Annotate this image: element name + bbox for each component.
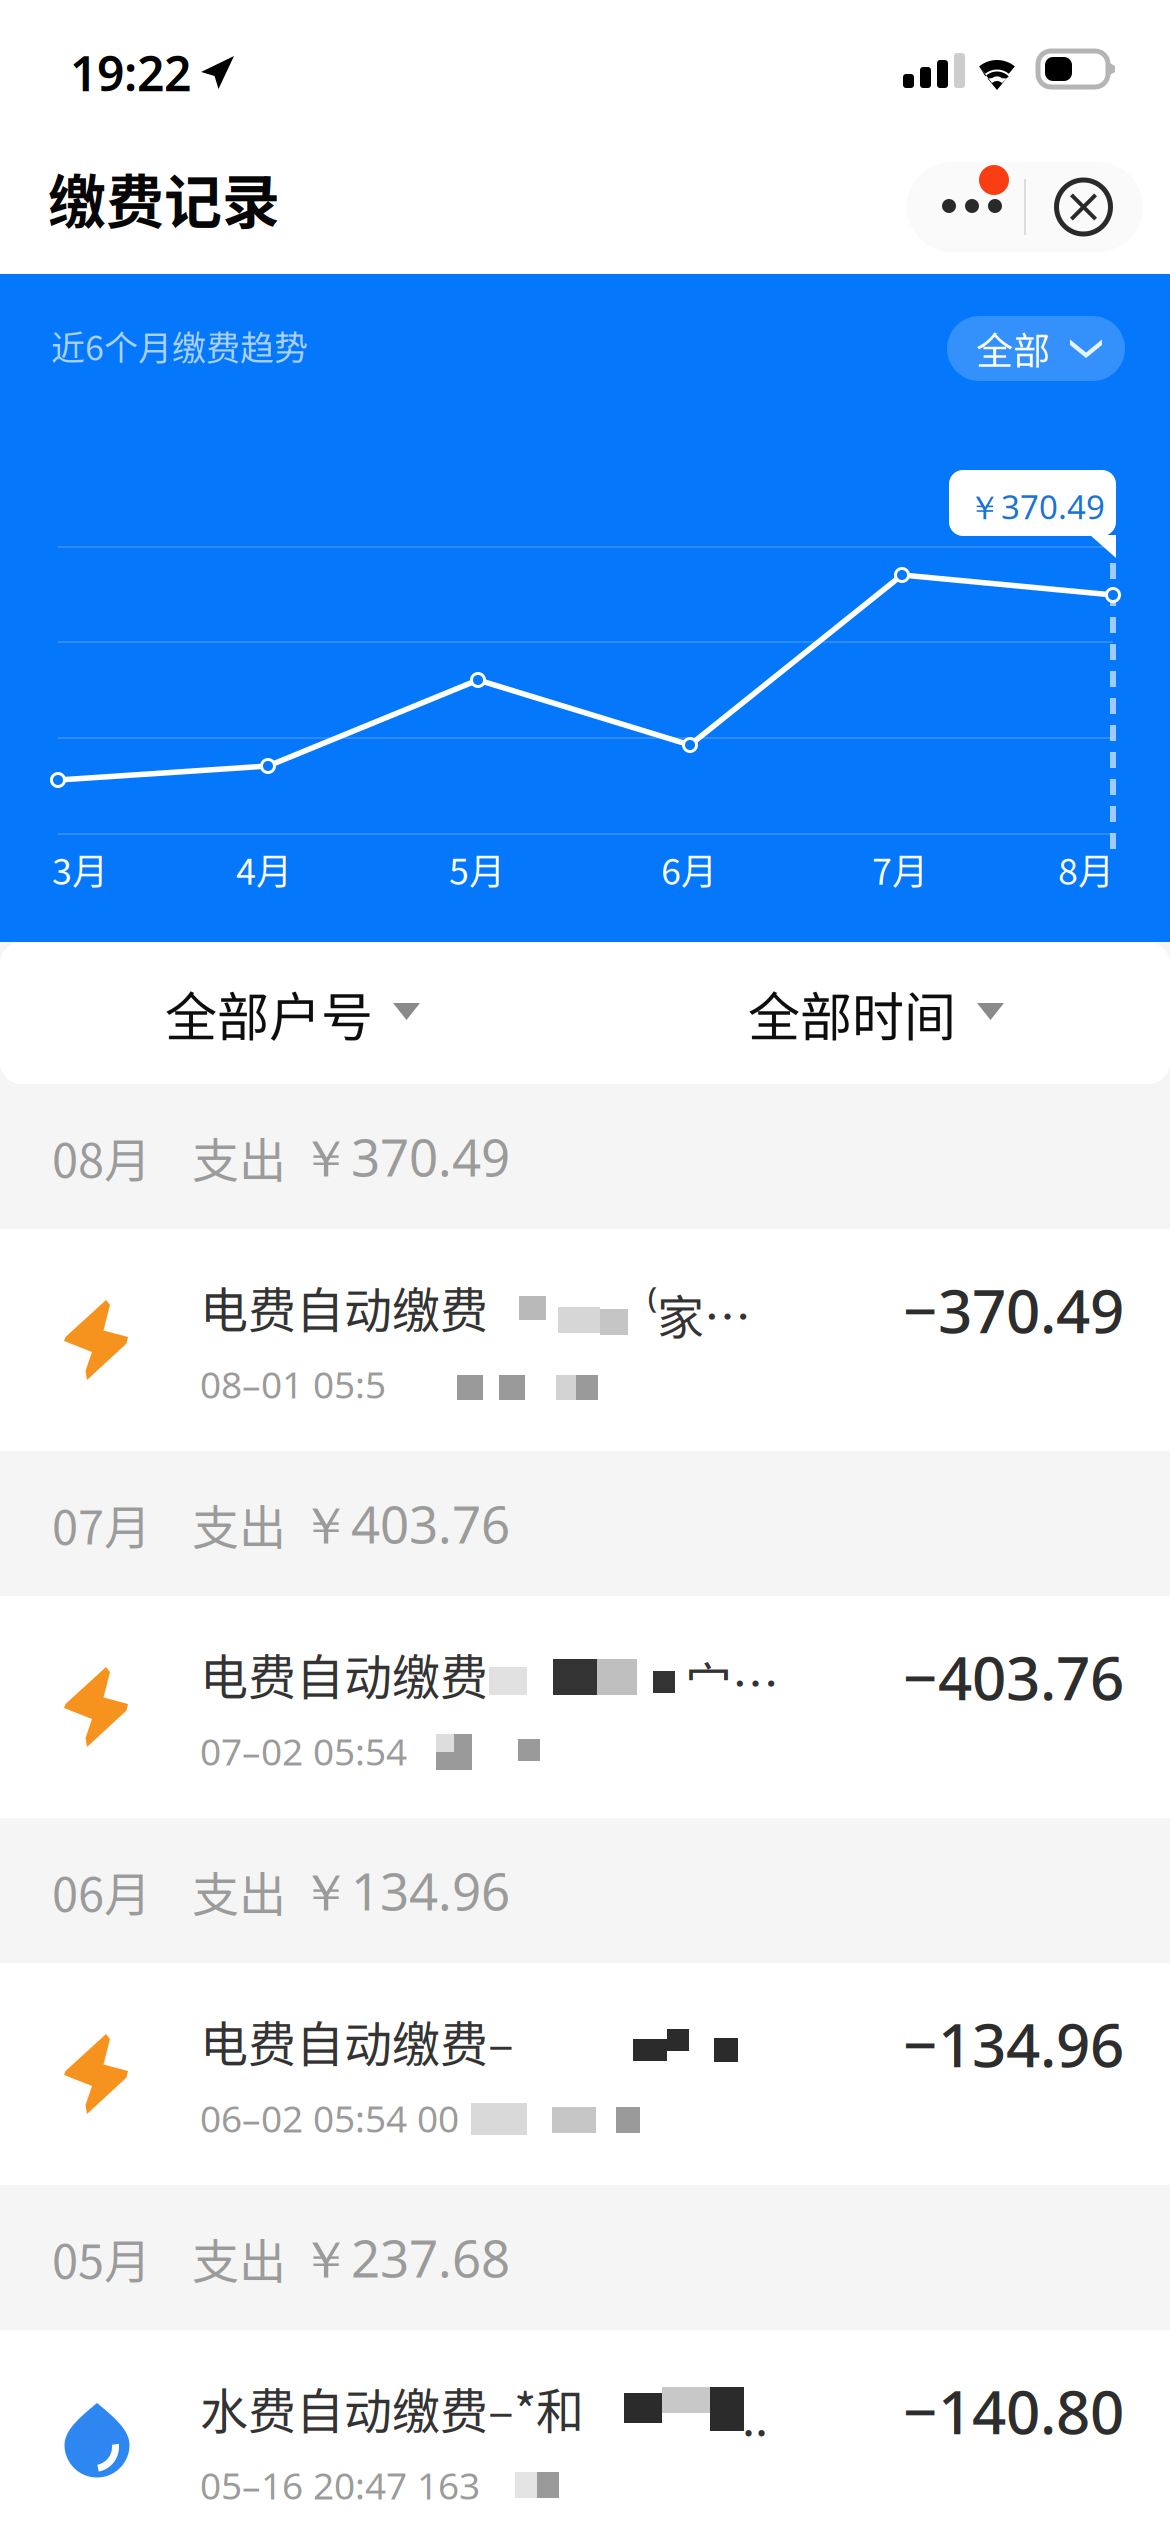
button[interactable]: 电费自动缴费	[0, 1229, 1170, 1451]
button[interactable]: 全部户号	[0, 942, 585, 1084]
staticText: 电费自动缴费–	[200, 2006, 514, 2075]
button[interactable]: More options	[907, 162, 1024, 252]
staticText: ￥370.49	[968, 484, 1105, 529]
staticText: 缴费记录	[48, 156, 280, 240]
staticText: ￥134.96	[300, 1856, 510, 1926]
staticText: ￥403.76	[300, 1489, 510, 1559]
staticText: 全部户号	[165, 976, 373, 1051]
staticText: 支出	[192, 1123, 286, 1191]
staticText: 5月	[449, 843, 505, 895]
staticText: 8月	[1058, 843, 1114, 895]
staticText: 支出	[192, 2224, 286, 2292]
staticText: 07月	[52, 1490, 151, 1558]
staticText: 06–02 05:54 00	[200, 2093, 459, 2143]
staticText: 全部时间	[748, 976, 956, 1051]
staticText: ⁽家…	[646, 1280, 751, 1348]
staticText: 4月	[236, 843, 292, 895]
staticText: −140.80	[903, 2370, 1124, 2452]
staticText: 电费自动缴费	[200, 1639, 488, 1708]
staticText: 3月	[52, 843, 108, 895]
staticText: 19:22	[70, 40, 191, 105]
staticText: 宀…	[685, 1647, 779, 1715]
button[interactable]: 全部时间	[585, 942, 1170, 1084]
staticText: 05–16 20:47 163	[200, 2460, 480, 2510]
staticText: −403.76	[903, 1636, 1124, 1718]
button[interactable]: 电费自动缴费	[0, 1596, 1170, 1818]
staticText: ..	[742, 2381, 768, 2449]
staticText: 电费自动缴费	[200, 1272, 488, 1341]
staticText: 水费自动缴费–*和	[200, 2373, 584, 2442]
staticText: 近6个月缴费趋势	[51, 321, 308, 370]
staticText: 07–02 05:54	[200, 1726, 407, 1776]
staticText: 支出	[192, 1857, 286, 1925]
staticText: 08月	[52, 1123, 151, 1191]
staticText: 08–01 05:5	[200, 1359, 386, 1409]
staticText: 支出	[192, 1490, 286, 1558]
staticText: −370.49	[903, 1269, 1124, 1351]
staticText: 05月	[52, 2224, 151, 2292]
button[interactable]: 全部	[947, 316, 1125, 381]
button[interactable]: Close	[1024, 162, 1143, 252]
staticText: 06月	[52, 1857, 151, 1925]
staticText: −134.96	[903, 2003, 1124, 2085]
staticText: 6月	[661, 843, 717, 895]
button[interactable]: 水费自动缴费–*和	[0, 2330, 1170, 2532]
button[interactable]: 电费自动缴费–	[0, 1963, 1170, 2185]
staticText: 全部	[976, 322, 1050, 375]
staticText: 7月	[872, 843, 928, 895]
staticText: ￥237.68	[300, 2223, 510, 2293]
staticText: ￥370.49	[300, 1122, 510, 1192]
